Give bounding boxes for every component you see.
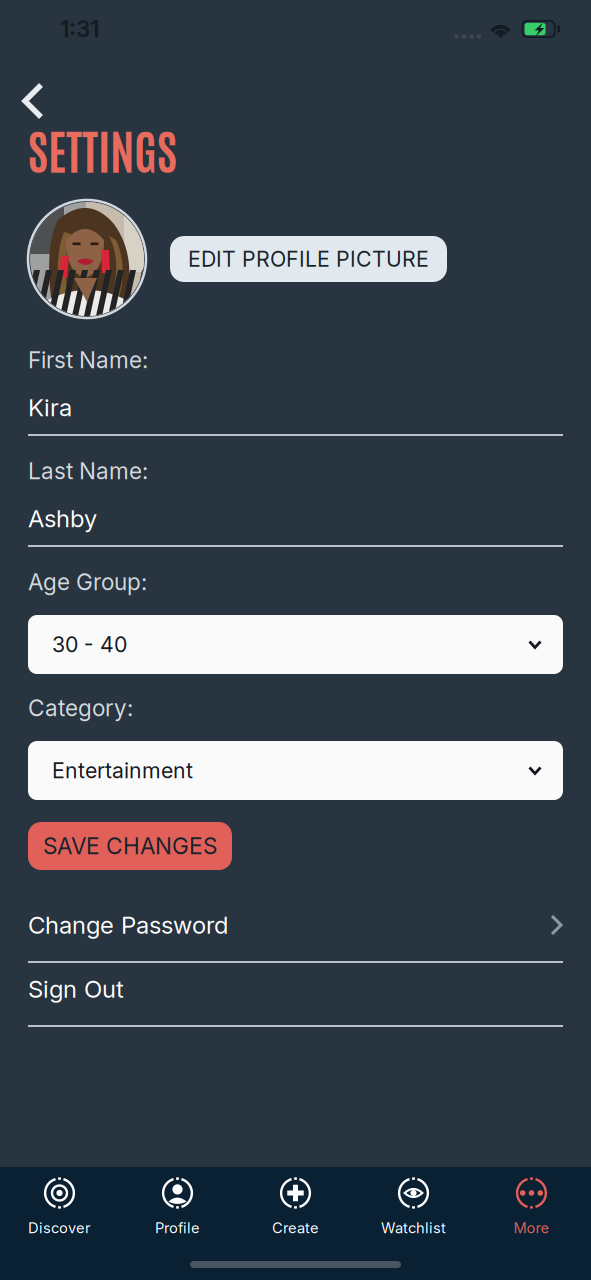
staticText: Discover bbox=[28, 1219, 91, 1237]
staticText: Last Name: bbox=[28, 457, 148, 485]
button[interactable]: Back bbox=[8, 80, 58, 122]
button[interactable]: EDIT PROFILE PICTURE bbox=[170, 236, 447, 282]
staticText: Create bbox=[272, 1219, 319, 1237]
button[interactable]: Profile bbox=[118, 1177, 236, 1231]
staticText: Category: bbox=[28, 694, 133, 722]
staticText: SETTINGS bbox=[28, 119, 177, 179]
button[interactable]: SAVE CHANGES bbox=[28, 822, 232, 870]
staticText: Kira bbox=[28, 393, 72, 422]
staticText: 30 - 40 bbox=[52, 632, 127, 657]
staticText: Ashby bbox=[28, 504, 97, 533]
staticText: 1:31 bbox=[60, 15, 99, 43]
staticText: First Name: bbox=[28, 346, 148, 374]
button[interactable]: Change Password bbox=[0, 910, 591, 963]
button[interactable]: Watchlist bbox=[354, 1177, 472, 1231]
button[interactable]: Entertainment bbox=[28, 741, 563, 800]
button[interactable]: More bbox=[472, 1177, 590, 1231]
staticText: Age Group: bbox=[28, 568, 147, 596]
staticText: More bbox=[513, 1219, 549, 1237]
button[interactable]: Create bbox=[236, 1177, 354, 1231]
staticText: SAVE CHANGES bbox=[43, 832, 217, 860]
staticText: Change Password bbox=[28, 910, 228, 939]
button[interactable]: Discover bbox=[0, 1177, 118, 1231]
staticText: Watchlist bbox=[381, 1219, 446, 1237]
staticText: Entertainment bbox=[52, 758, 193, 783]
button[interactable]: 30 - 40 bbox=[28, 615, 563, 674]
staticText: Sign Out bbox=[28, 974, 124, 1003]
staticText: EDIT PROFILE PICTURE bbox=[188, 246, 429, 272]
button[interactable]: Sign Out bbox=[0, 974, 591, 1027]
staticText: Profile bbox=[155, 1219, 200, 1237]
